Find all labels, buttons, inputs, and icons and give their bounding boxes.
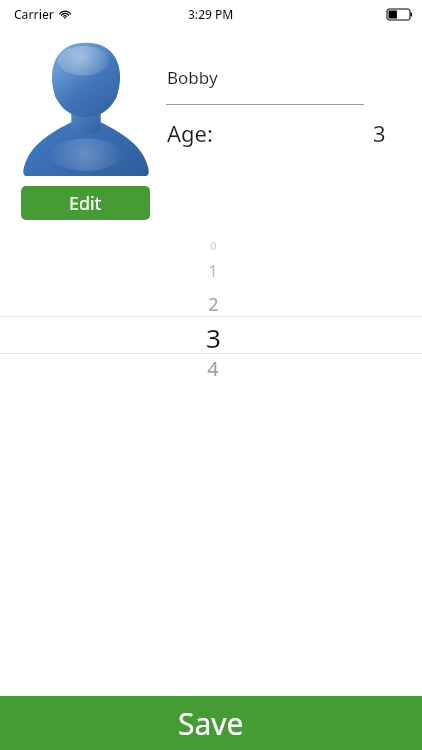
button[interactable]: Edit xyxy=(21,186,150,220)
staticText: Age: xyxy=(167,118,213,148)
staticText: Save xyxy=(178,703,244,744)
staticText: Bobby xyxy=(167,66,218,89)
staticText: 3 xyxy=(206,320,221,355)
staticText: 2 xyxy=(208,292,219,317)
staticText: 0 xyxy=(210,238,217,253)
staticText: Edit xyxy=(69,191,102,216)
staticText: 1 xyxy=(208,260,218,282)
staticText: Carrier xyxy=(14,6,54,22)
button[interactable]: Age picker xyxy=(0,242,422,382)
staticText: 3:29 PM xyxy=(188,6,234,22)
button[interactable]: Save xyxy=(0,696,422,750)
staticText: 3 xyxy=(373,118,386,148)
staticText: 4 xyxy=(207,355,219,382)
